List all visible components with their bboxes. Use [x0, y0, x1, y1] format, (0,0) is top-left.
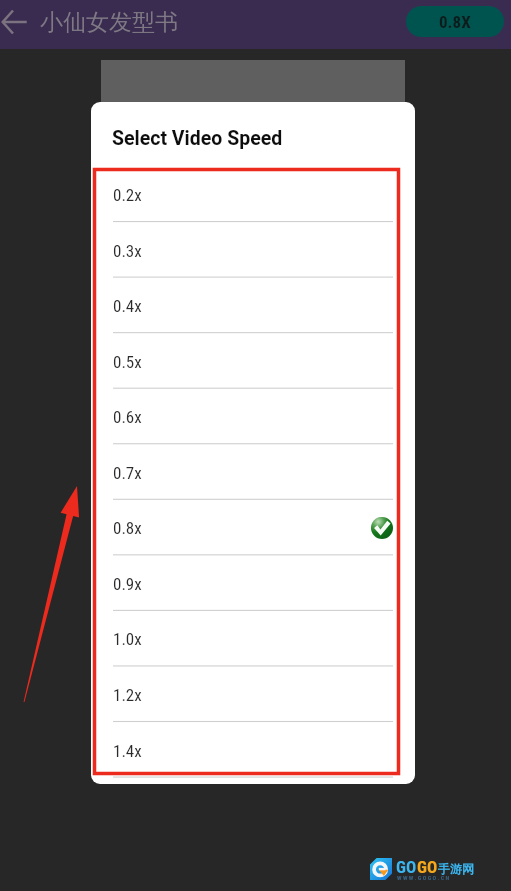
button[interactable]: 0.8X — [406, 6, 504, 37]
button[interactable]: Back — [0, 0, 28, 47]
staticText: W W W . G O G O . C N — [397, 874, 450, 881]
button[interactable]: 0.8x — [91, 499, 415, 555]
button[interactable]: 0.9x — [91, 555, 415, 611]
staticText: 1.4x — [113, 741, 142, 761]
staticText: GO — [417, 857, 438, 877]
staticText: 手游网 — [438, 861, 474, 876]
staticText: 0.6x — [113, 407, 142, 427]
staticText: 1.2x — [113, 685, 142, 705]
button[interactable]: 0.3x — [91, 222, 415, 278]
staticText: 0.4x — [113, 296, 142, 316]
staticText: 0.2x — [113, 185, 142, 205]
button[interactable]: 1.2x — [91, 666, 415, 722]
staticText: 0.3x — [113, 241, 142, 261]
button[interactable]: 0.5x — [91, 333, 415, 389]
staticText: 小仙女发型书 — [40, 8, 178, 37]
button[interactable]: 0.7x — [91, 444, 415, 500]
button[interactable]: 1.4x — [91, 722, 415, 778]
staticText: GO — [396, 857, 417, 877]
button[interactable]: 0.6x — [91, 388, 415, 444]
staticText: 0.7x — [113, 463, 142, 483]
button[interactable]: 0.2x — [91, 166, 415, 222]
staticText: 1.0x — [113, 629, 142, 649]
staticText: 0.9x — [113, 574, 142, 594]
staticText: 0.8x — [113, 518, 142, 538]
staticText: 0.8X — [439, 12, 471, 32]
staticText: Select Video Speed — [112, 127, 283, 150]
button[interactable]: 1.0x — [91, 610, 415, 666]
button[interactable]: 0.4x — [91, 277, 415, 333]
staticText: 0.5x — [113, 352, 142, 372]
